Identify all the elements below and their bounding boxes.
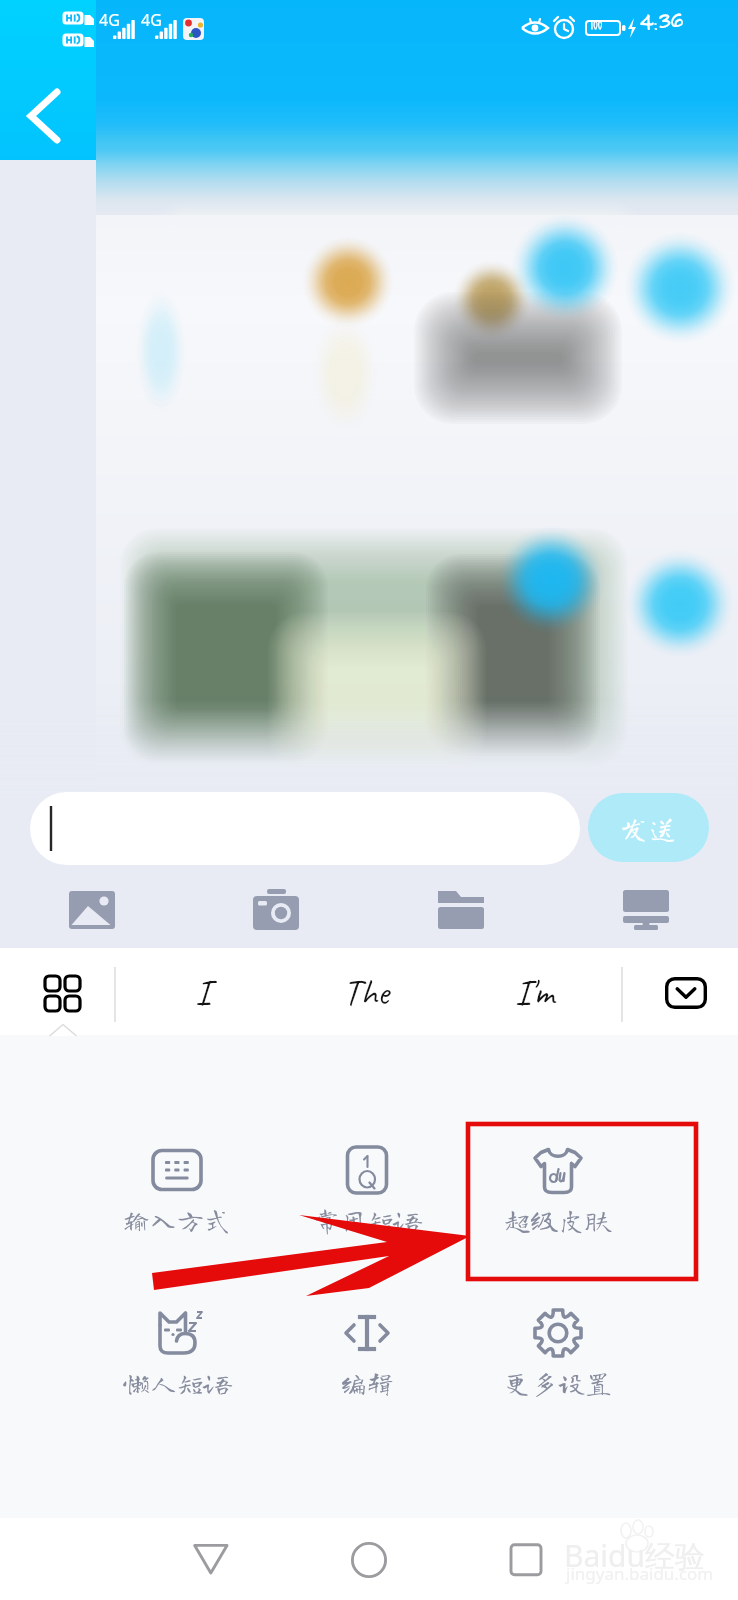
staticText: Baidu经验 <box>564 1535 706 1576</box>
button[interactable]: I <box>142 948 262 1035</box>
staticText: The <box>343 969 389 1014</box>
button[interactable]: 输入方式 <box>82 1124 272 1244</box>
staticText: I'm <box>515 969 554 1014</box>
button[interactable]: 超级皮肤 <box>463 1124 653 1244</box>
staticText: 常用短语 <box>313 1206 421 1233</box>
button[interactable]: The <box>306 948 426 1035</box>
button[interactable]: Recents <box>484 1518 564 1600</box>
button[interactable]: 常用短语 <box>272 1124 462 1244</box>
button[interactable]: Files <box>368 879 553 941</box>
staticText: 4G <box>99 9 120 31</box>
button[interactable]: Home <box>328 1518 408 1600</box>
staticText: I <box>195 969 210 1014</box>
staticText: 超级皮肤 <box>504 1206 612 1233</box>
button[interactable]: 更多设置 <box>463 1287 653 1407</box>
staticText: 4:36 <box>639 5 682 36</box>
button[interactable]: Hide keyboard <box>665 977 707 1009</box>
button[interactable]: Back <box>0 0 96 160</box>
staticText: 发送 <box>619 813 678 842</box>
staticText: 100 <box>590 16 602 33</box>
button[interactable]: I'm <box>474 948 594 1035</box>
staticText: jingyan.baidu.com <box>566 1562 714 1585</box>
button[interactable]: 发送 <box>588 793 709 862</box>
button[interactable]: 编辑 <box>272 1287 462 1407</box>
button[interactable]: Back <box>170 1518 250 1600</box>
staticText: 输入方式 <box>123 1206 231 1233</box>
button[interactable]: Screen share <box>553 879 738 941</box>
button[interactable]: Panel <box>0 948 115 1035</box>
staticText: 更多设置 <box>504 1369 612 1396</box>
staticText: 编辑 <box>340 1369 394 1396</box>
button[interactable] <box>30 792 580 865</box>
staticText: 懒人短语 <box>123 1369 231 1396</box>
staticText: 4G <box>141 9 162 31</box>
button[interactable]: 懒人短语 <box>82 1287 272 1407</box>
button[interactable]: Camera <box>184 879 368 941</box>
button[interactable]: Gallery <box>0 879 184 941</box>
